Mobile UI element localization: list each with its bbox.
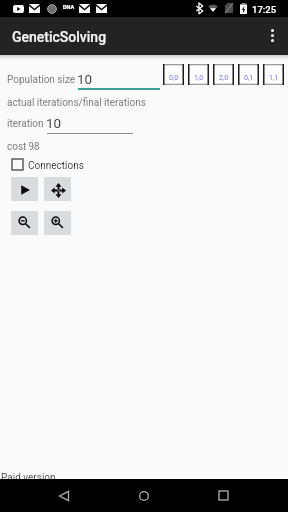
staticText: 0,1 xyxy=(244,74,254,82)
button[interactable]: 2,0 xyxy=(213,64,234,85)
button[interactable]: 0,1 xyxy=(238,64,259,85)
staticText: 10 xyxy=(77,71,93,87)
staticText: actual iterations/final iterations xyxy=(7,97,146,109)
staticText: Connections xyxy=(28,160,84,172)
staticText: iteration xyxy=(7,118,44,130)
staticText: 0,0 xyxy=(169,74,179,82)
staticText: 1,1 xyxy=(269,74,279,82)
staticText: 1,0 xyxy=(194,74,204,82)
button[interactable]: Zoom out xyxy=(11,211,38,235)
button[interactable]: Connections xyxy=(8,154,92,174)
button[interactable]: Move xyxy=(44,177,71,201)
button[interactable]: More options xyxy=(256,20,288,51)
staticText: Paid version xyxy=(1,472,56,484)
staticText: Population size xyxy=(7,74,76,86)
button[interactable]: Play xyxy=(11,177,38,201)
staticText: 10 xyxy=(46,115,62,131)
button[interactable]: 1,1 xyxy=(263,64,284,85)
button[interactable]: 1,0 xyxy=(188,64,209,85)
staticText: cost 98 xyxy=(7,141,40,153)
button[interactable]: Zoom in xyxy=(44,211,71,235)
staticText: GeneticSolving xyxy=(12,29,107,45)
button[interactable]: 0,0 xyxy=(163,64,184,85)
button[interactable]: Back xyxy=(48,479,80,512)
button[interactable]: Recents xyxy=(207,479,239,512)
staticText: 17:25 xyxy=(252,4,277,15)
staticText: DNA xyxy=(63,4,75,10)
staticText: 2,0 xyxy=(219,74,229,82)
button[interactable]: Home xyxy=(128,479,160,512)
